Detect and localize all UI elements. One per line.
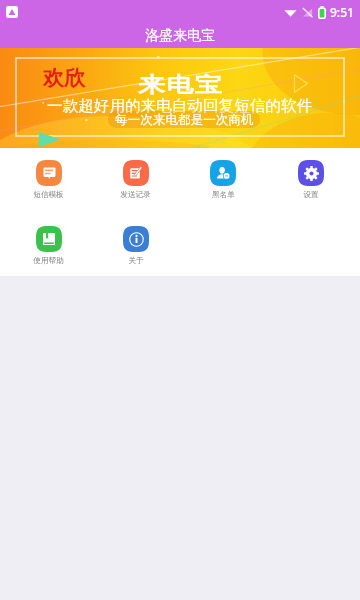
staticText: 欢欣 xyxy=(43,65,85,91)
staticText: 短信模板 xyxy=(33,190,64,200)
staticText: 关于 xyxy=(128,256,144,266)
staticText: 9:51 xyxy=(330,4,354,20)
staticText: 洛盛来电宝 xyxy=(145,27,215,45)
button[interactable]: 发送记录 xyxy=(92,160,179,200)
button[interactable]: 黑名单 xyxy=(179,160,267,200)
staticText: 来电宝 xyxy=(137,72,223,98)
staticText: 发送记录 xyxy=(120,190,151,200)
button[interactable]: 使用帮助 xyxy=(5,226,92,266)
button[interactable]: 关于 xyxy=(92,226,179,266)
staticText: 一款超好用的来电自动回复短信的软件 xyxy=(47,96,313,116)
button[interactable]: 设置 xyxy=(267,160,355,200)
staticText: 每一次来电都是一次商机 xyxy=(115,112,254,128)
staticText: 黑名单 xyxy=(212,190,235,200)
staticText: 设置 xyxy=(303,190,319,200)
button[interactable]: 短信模板 xyxy=(5,160,92,200)
staticText: 使用帮助 xyxy=(33,256,64,266)
